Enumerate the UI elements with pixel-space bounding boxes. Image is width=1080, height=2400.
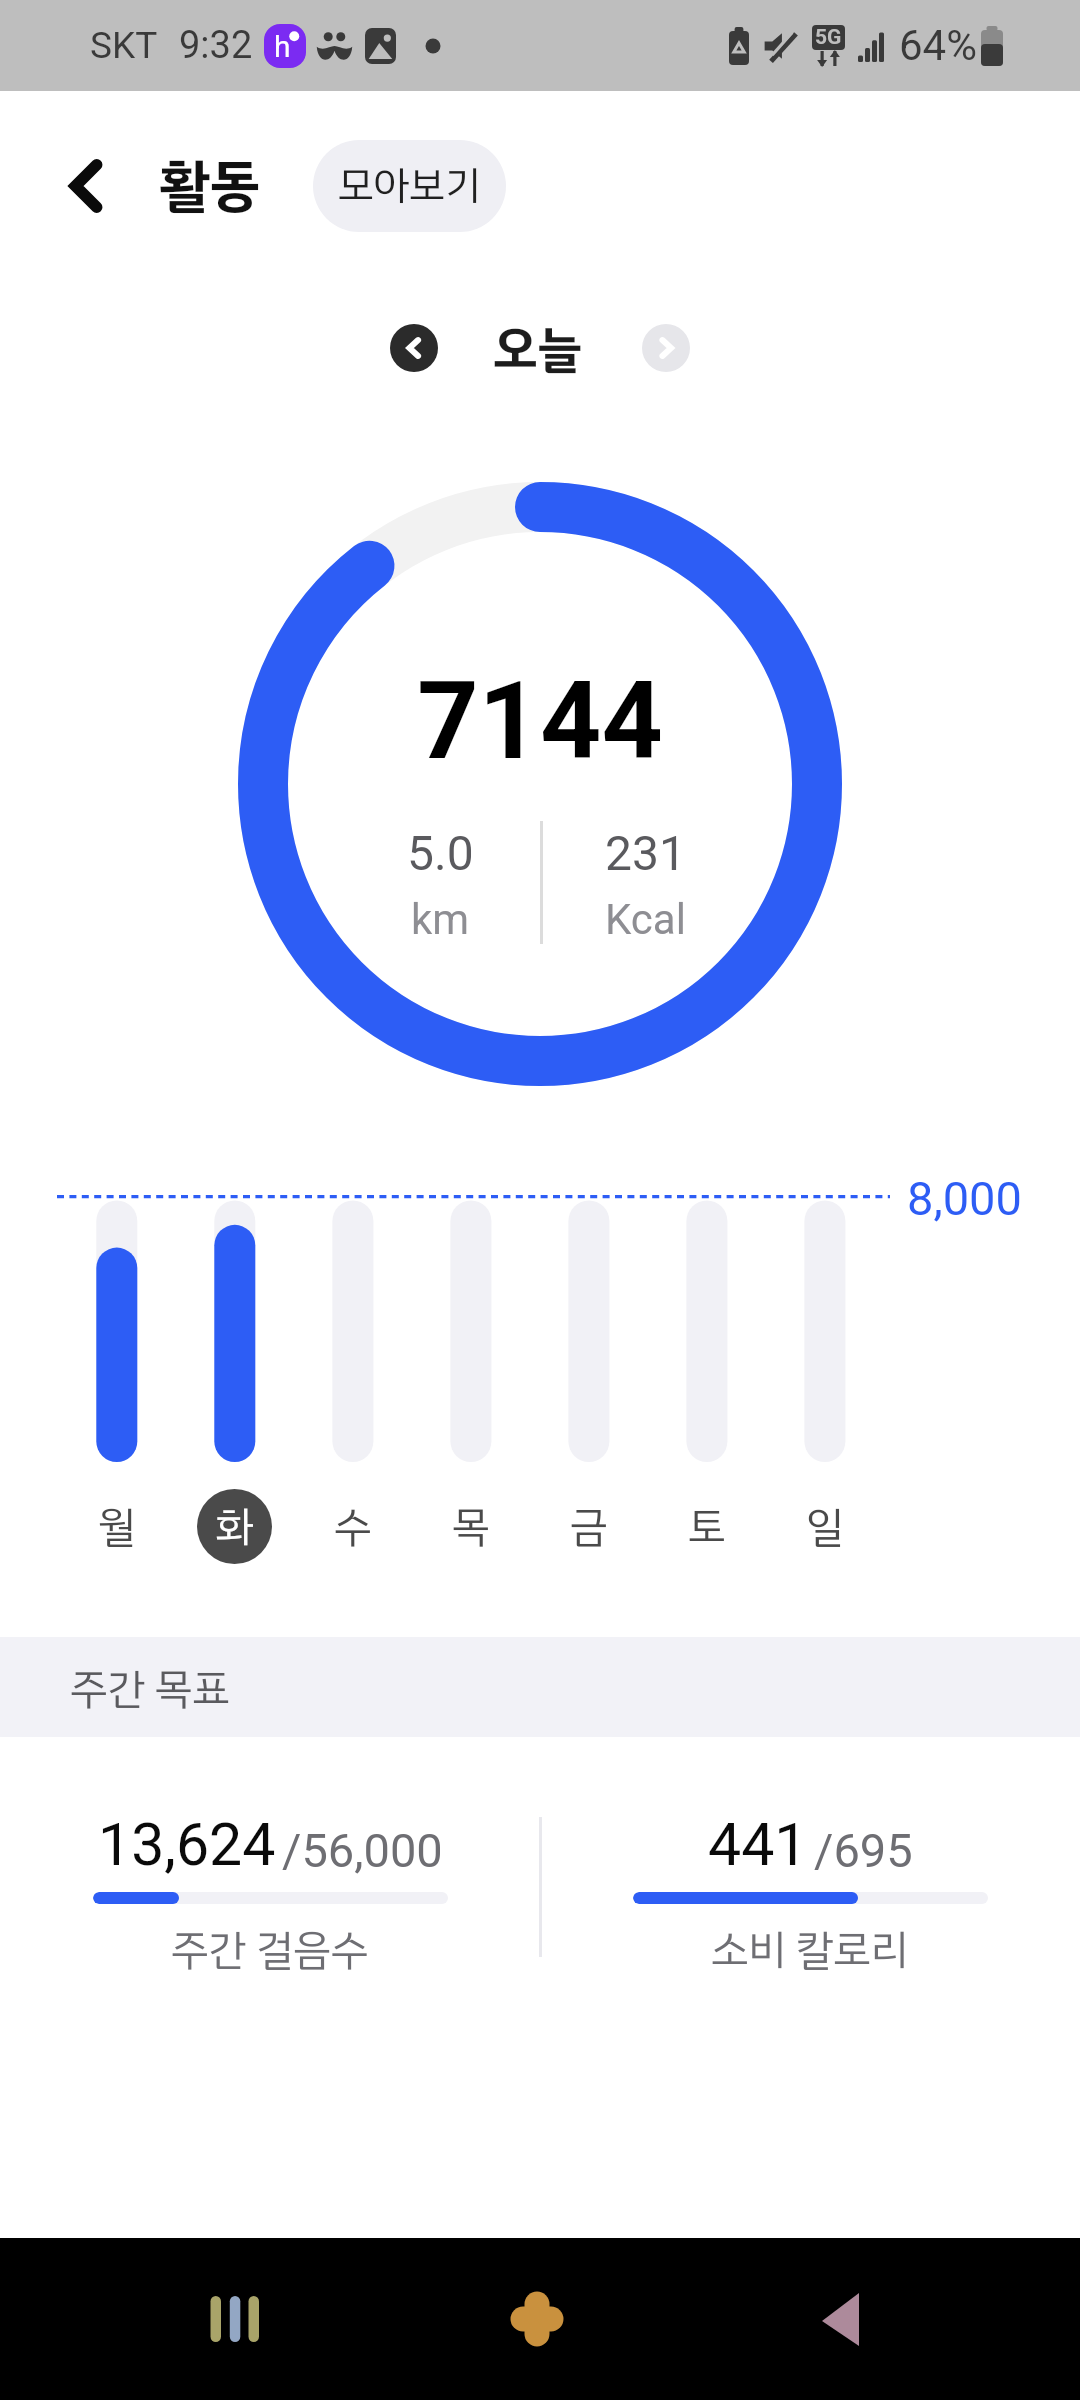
button[interactable]: Next day bbox=[642, 324, 690, 372]
button[interactable]: 금 bbox=[551, 1489, 626, 1564]
staticText: 소비 칼로리 bbox=[711, 1918, 909, 1981]
staticText: 8,000 bbox=[907, 1171, 1022, 1226]
button[interactable]: 13,624 bbox=[0, 1810, 540, 2010]
staticText: 9:32 bbox=[179, 23, 253, 68]
button[interactable]: Back bbox=[800, 2274, 890, 2364]
button[interactable]: Home bbox=[492, 2274, 582, 2364]
button[interactable]: 토 bbox=[669, 1489, 744, 1564]
staticText: Kcal bbox=[605, 895, 686, 944]
staticText: 주간 걸음수 bbox=[171, 1918, 369, 1981]
staticText: 13,624 bbox=[98, 1810, 276, 1879]
staticText: 활동 bbox=[160, 143, 260, 227]
button[interactable]: 일 bbox=[787, 1489, 862, 1564]
staticText: 모아보기 bbox=[338, 156, 481, 216]
button[interactable]: Recents bbox=[190, 2274, 280, 2364]
button[interactable]: Back bbox=[48, 142, 124, 218]
staticText: km bbox=[411, 895, 470, 944]
staticText: 화 bbox=[216, 1495, 254, 1558]
button[interactable]: 수 bbox=[315, 1489, 390, 1564]
staticText: 441 bbox=[708, 1810, 808, 1879]
staticText: h bbox=[274, 29, 291, 64]
staticText: 주간 목표 bbox=[70, 1657, 230, 1720]
staticText: 7144 bbox=[0, 659, 1080, 784]
staticText: 5G bbox=[815, 25, 842, 50]
staticText: SKT bbox=[90, 24, 158, 67]
staticText: 231 bbox=[605, 825, 686, 881]
staticText: 일 bbox=[806, 1495, 844, 1558]
staticText: 오늘 bbox=[493, 312, 583, 387]
button[interactable]: 화 bbox=[197, 1489, 272, 1564]
button[interactable]: 441 bbox=[540, 1810, 1080, 2010]
button[interactable]: 목 bbox=[433, 1489, 508, 1564]
staticText: 수 bbox=[334, 1495, 372, 1558]
button[interactable]: 월 bbox=[79, 1489, 154, 1564]
staticText: 금 bbox=[570, 1495, 608, 1558]
staticText: 64% bbox=[899, 21, 977, 70]
staticText: 목 bbox=[452, 1495, 490, 1558]
staticText: 토 bbox=[688, 1495, 726, 1558]
staticText: /695 bbox=[814, 1823, 913, 1878]
staticText: /56,000 bbox=[282, 1823, 443, 1878]
button[interactable]: Previous day bbox=[390, 324, 438, 372]
staticText: 5.0 bbox=[407, 825, 474, 881]
button[interactable]: 모아보기 bbox=[313, 140, 506, 232]
staticText: 월 bbox=[98, 1495, 136, 1558]
